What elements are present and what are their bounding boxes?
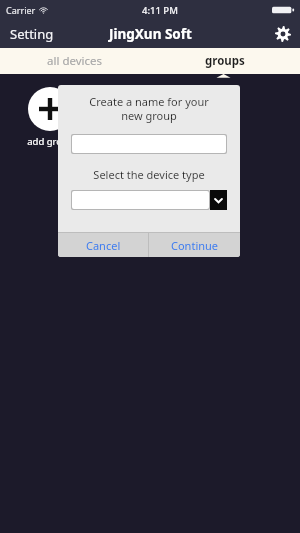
staticText: Cancel [86,238,121,253]
staticText: add group [27,135,74,148]
button[interactable]: groups [150,48,300,74]
staticText: Create a name for your new group [66,94,232,123]
staticText: Carrier [6,4,36,16]
button[interactable]: Continue [149,233,240,257]
staticText: Setting [10,25,54,43]
button[interactable]: Settings [266,20,300,48]
staticText: JingXun Soft [109,25,192,43]
staticText: groups [205,53,245,69]
staticText: all devices [47,53,103,69]
staticText: Continue [171,238,219,253]
staticText: Select the device type [66,167,232,182]
button[interactable]: Select device type [71,190,227,210]
button[interactable]: Add group [20,87,80,148]
button[interactable]: Setting [0,20,64,48]
button[interactable]: all devices [0,48,150,74]
staticText: 4:11 PM [142,4,178,17]
button[interactable]: Cancel [58,233,148,257]
